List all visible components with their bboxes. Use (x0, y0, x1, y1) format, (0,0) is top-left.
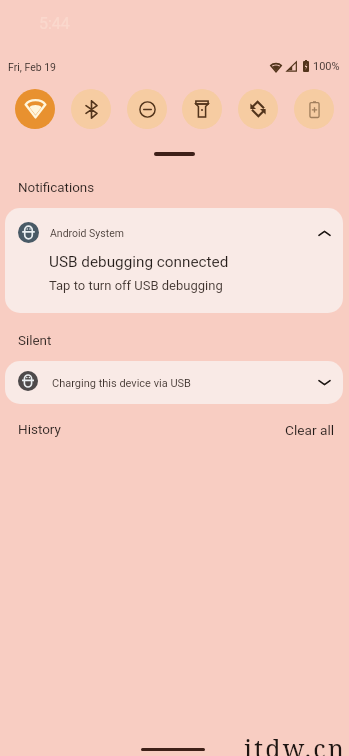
staticText: itdw.cn (244, 731, 347, 756)
staticText: USB debugging connected (49, 253, 229, 271)
staticText: Notifications (18, 180, 95, 196)
staticText: Charging this device via USB (52, 377, 191, 390)
staticText: Clear all (285, 422, 335, 438)
button[interactable]: Wi-Fi (15, 89, 55, 129)
button[interactable]: Bluetooth (71, 89, 111, 129)
staticText: Tap to turn off USB debugging (49, 278, 223, 293)
button[interactable]: Charging this device via USB (5, 361, 343, 404)
button[interactable]: History (10, 416, 69, 442)
button[interactable]: Expand notification (313, 371, 335, 393)
staticText: Silent (18, 333, 52, 349)
button[interactable]: Collapse notification (313, 222, 335, 244)
staticText: 5:44 (39, 14, 70, 33)
staticText: Android System (50, 227, 124, 239)
button[interactable]: Expand quick settings (154, 152, 195, 156)
button[interactable]: Android System (5, 208, 343, 313)
button[interactable]: Flashlight (182, 89, 222, 129)
button[interactable]: Battery Saver (294, 89, 334, 129)
staticText: 100% (313, 60, 340, 73)
button[interactable]: Clear all (277, 417, 343, 443)
staticText: History (18, 421, 61, 437)
button[interactable]: Do not disturb (127, 89, 167, 129)
button[interactable]: Auto-rotate (238, 89, 278, 129)
staticText: Fri, Feb 19 (8, 61, 57, 73)
